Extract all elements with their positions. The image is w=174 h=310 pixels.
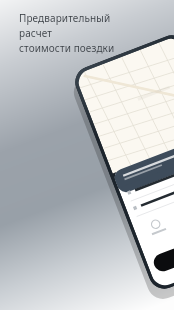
button[interactable]: Предварительный расчет стоимости поездки <box>0 0 174 310</box>
